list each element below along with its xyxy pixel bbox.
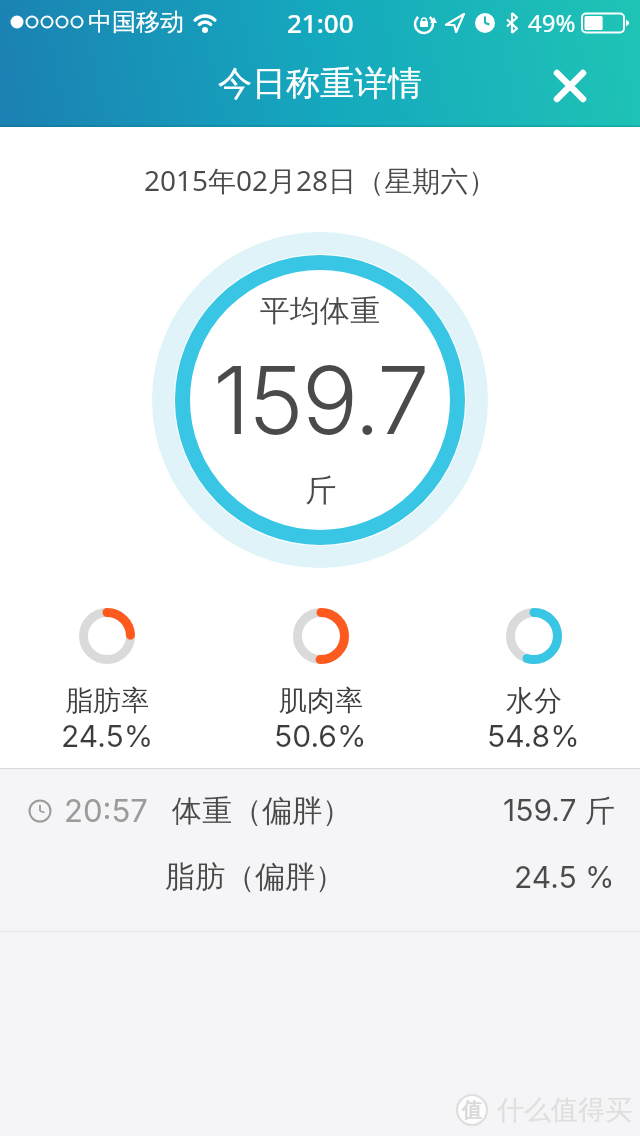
staticText: 斤	[305, 471, 336, 510]
staticText: 水分	[506, 683, 562, 718]
staticText: 脂肪（偏胖）	[165, 858, 345, 896]
staticText: 2015年02月28日（星期六）	[144, 161, 497, 199]
staticText: 24.5 %	[514, 859, 615, 895]
button[interactable]: 20:57	[0, 769, 640, 853]
button[interactable]: 脂肪（偏胖）	[0, 853, 640, 901]
staticText: 21:00	[287, 5, 354, 40]
staticText: 今日称重详情	[218, 62, 422, 105]
staticText: 50.6%	[274, 718, 367, 754]
staticText: 体重（偏胖）	[172, 792, 352, 830]
staticText: 值	[462, 1098, 482, 1123]
staticText: 平均体重	[260, 292, 380, 330]
staticText: 24.5%	[61, 718, 154, 754]
staticText: 159.7 斤	[503, 792, 615, 830]
button[interactable]	[550, 66, 590, 106]
staticText: 肌肉率	[279, 683, 363, 718]
staticText: 什么值得买	[497, 1093, 632, 1127]
staticText: 20:57	[64, 792, 148, 830]
staticText: 49%	[528, 6, 576, 39]
staticText: 54.8%	[487, 718, 580, 754]
staticText: 脂肪率	[65, 683, 149, 718]
staticText: 中国移动	[88, 7, 184, 37]
staticText: 159.7	[213, 343, 428, 457]
